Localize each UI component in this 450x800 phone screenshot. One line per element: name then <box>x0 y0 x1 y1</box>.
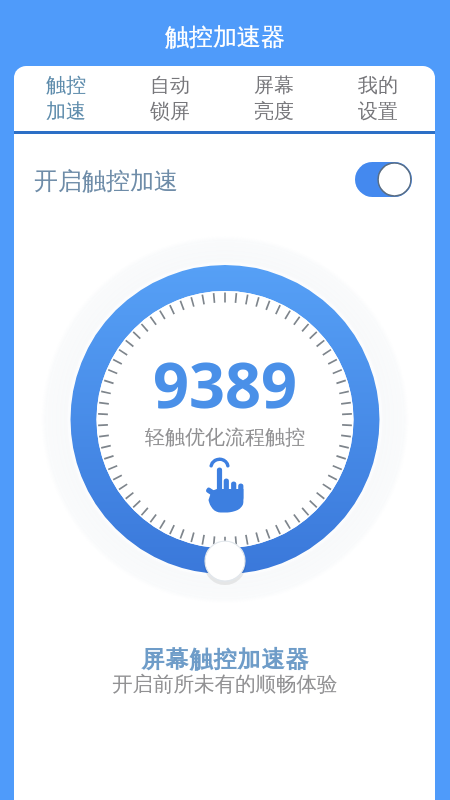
staticText: 我的 设置 <box>358 73 398 124</box>
staticText: 触控加速器 <box>165 22 285 52</box>
button[interactable]: 屏幕 亮度 <box>222 66 326 131</box>
staticText: 屏幕 亮度 <box>254 73 294 124</box>
button[interactable]: 触控 加速 <box>14 66 118 131</box>
staticText: 触控 加速 <box>46 73 86 124</box>
button[interactable]: 我的 设置 <box>326 66 430 131</box>
staticText: 轻触优化流程触控 <box>145 425 305 450</box>
staticText: 自动 锁屏 <box>150 73 190 124</box>
staticText: 屏幕触控加速器 <box>141 645 309 674</box>
staticText: 开启触控加速 <box>34 166 178 196</box>
other: Tap gesture <box>206 457 244 515</box>
button[interactable]: 自动 锁屏 <box>118 66 222 131</box>
staticText: 开启前所未有的顺畅体验 <box>112 671 338 697</box>
button[interactable]: Toggle touch acceleration <box>355 162 412 197</box>
staticText: 9389 <box>153 341 298 427</box>
